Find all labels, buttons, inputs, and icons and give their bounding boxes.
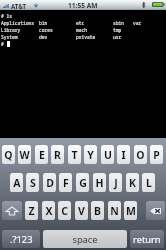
button[interactable]: Backspace bbox=[146, 201, 165, 220]
staticText: # ls bbox=[1, 13, 13, 19]
button[interactable]: K bbox=[126, 173, 139, 192]
staticText: M bbox=[126, 204, 136, 218]
staticText: 11:55 AM bbox=[68, 1, 98, 10]
button[interactable]: C bbox=[58, 201, 71, 220]
staticText: F bbox=[63, 176, 69, 190]
staticText: P bbox=[153, 148, 160, 162]
button[interactable]: H bbox=[93, 173, 106, 192]
button[interactable]: O bbox=[134, 145, 147, 164]
staticText: D bbox=[46, 176, 54, 190]
button[interactable]: D bbox=[43, 173, 56, 192]
button[interactable]: Z bbox=[25, 201, 38, 220]
button[interactable]: J bbox=[109, 173, 122, 192]
button[interactable]: U bbox=[101, 145, 114, 164]
staticText: C bbox=[61, 204, 68, 218]
staticText: Y bbox=[87, 148, 94, 162]
button[interactable]: E bbox=[35, 145, 48, 164]
staticText: E bbox=[39, 148, 45, 162]
staticText: L bbox=[146, 176, 152, 190]
staticText: V bbox=[78, 204, 85, 218]
staticText: G bbox=[79, 176, 87, 190]
button[interactable]: Shift bbox=[2, 201, 22, 220]
button[interactable]: return bbox=[130, 230, 164, 248]
button[interactable]: S bbox=[26, 173, 39, 192]
staticText: U bbox=[104, 148, 112, 162]
staticText: I bbox=[121, 148, 126, 162]
staticText: var bbox=[133, 20, 142, 26]
staticText: return bbox=[133, 233, 161, 246]
button[interactable]: X bbox=[42, 201, 55, 220]
button[interactable]: space bbox=[43, 230, 127, 248]
staticText: B bbox=[94, 204, 101, 218]
button[interactable]: G bbox=[76, 173, 89, 192]
button[interactable]: M bbox=[124, 201, 137, 220]
staticText: J bbox=[114, 176, 118, 190]
staticText: Z bbox=[28, 204, 35, 218]
staticText: cores bbox=[39, 27, 53, 33]
button[interactable]: I bbox=[117, 145, 130, 164]
staticText: dev bbox=[39, 34, 48, 40]
staticText: O bbox=[136, 148, 145, 162]
button[interactable]: W bbox=[18, 145, 31, 164]
staticText: A bbox=[13, 176, 21, 190]
button[interactable]: V bbox=[75, 201, 88, 220]
button[interactable]: B bbox=[91, 201, 104, 220]
button[interactable]: R bbox=[51, 145, 64, 164]
button[interactable]: F bbox=[59, 173, 72, 192]
staticText: usr bbox=[113, 34, 122, 40]
staticText: private bbox=[76, 34, 96, 40]
staticText: H bbox=[95, 176, 104, 190]
button[interactable]: A bbox=[10, 173, 23, 192]
staticText: N bbox=[110, 204, 119, 218]
staticText: # bbox=[1, 41, 4, 47]
staticText: R bbox=[54, 148, 61, 162]
button[interactable]: T bbox=[68, 145, 81, 164]
button[interactable]: L bbox=[142, 173, 155, 192]
staticText: .?123 bbox=[10, 233, 33, 246]
button[interactable]: .?123 bbox=[2, 230, 40, 248]
staticText: System bbox=[1, 34, 18, 40]
button[interactable]: Q bbox=[2, 145, 15, 164]
staticText: Library bbox=[1, 27, 21, 33]
staticText: K bbox=[129, 176, 136, 190]
staticText: W bbox=[19, 148, 30, 162]
staticText: mach bbox=[76, 27, 88, 33]
staticText: X bbox=[45, 204, 53, 218]
staticText: tmp bbox=[113, 27, 122, 33]
staticText: bin bbox=[39, 20, 48, 26]
staticText: S bbox=[30, 176, 36, 190]
staticText: T bbox=[71, 148, 78, 162]
button[interactable]: N bbox=[108, 201, 121, 220]
button[interactable]: Y bbox=[84, 145, 97, 164]
staticText: Applications bbox=[1, 20, 35, 26]
staticText: Q bbox=[4, 148, 13, 162]
button[interactable]: P bbox=[150, 145, 163, 164]
staticText: etc bbox=[76, 20, 85, 26]
staticText: space bbox=[72, 233, 98, 246]
staticText: AT&T bbox=[11, 2, 27, 10]
staticText: sbin bbox=[113, 20, 125, 26]
